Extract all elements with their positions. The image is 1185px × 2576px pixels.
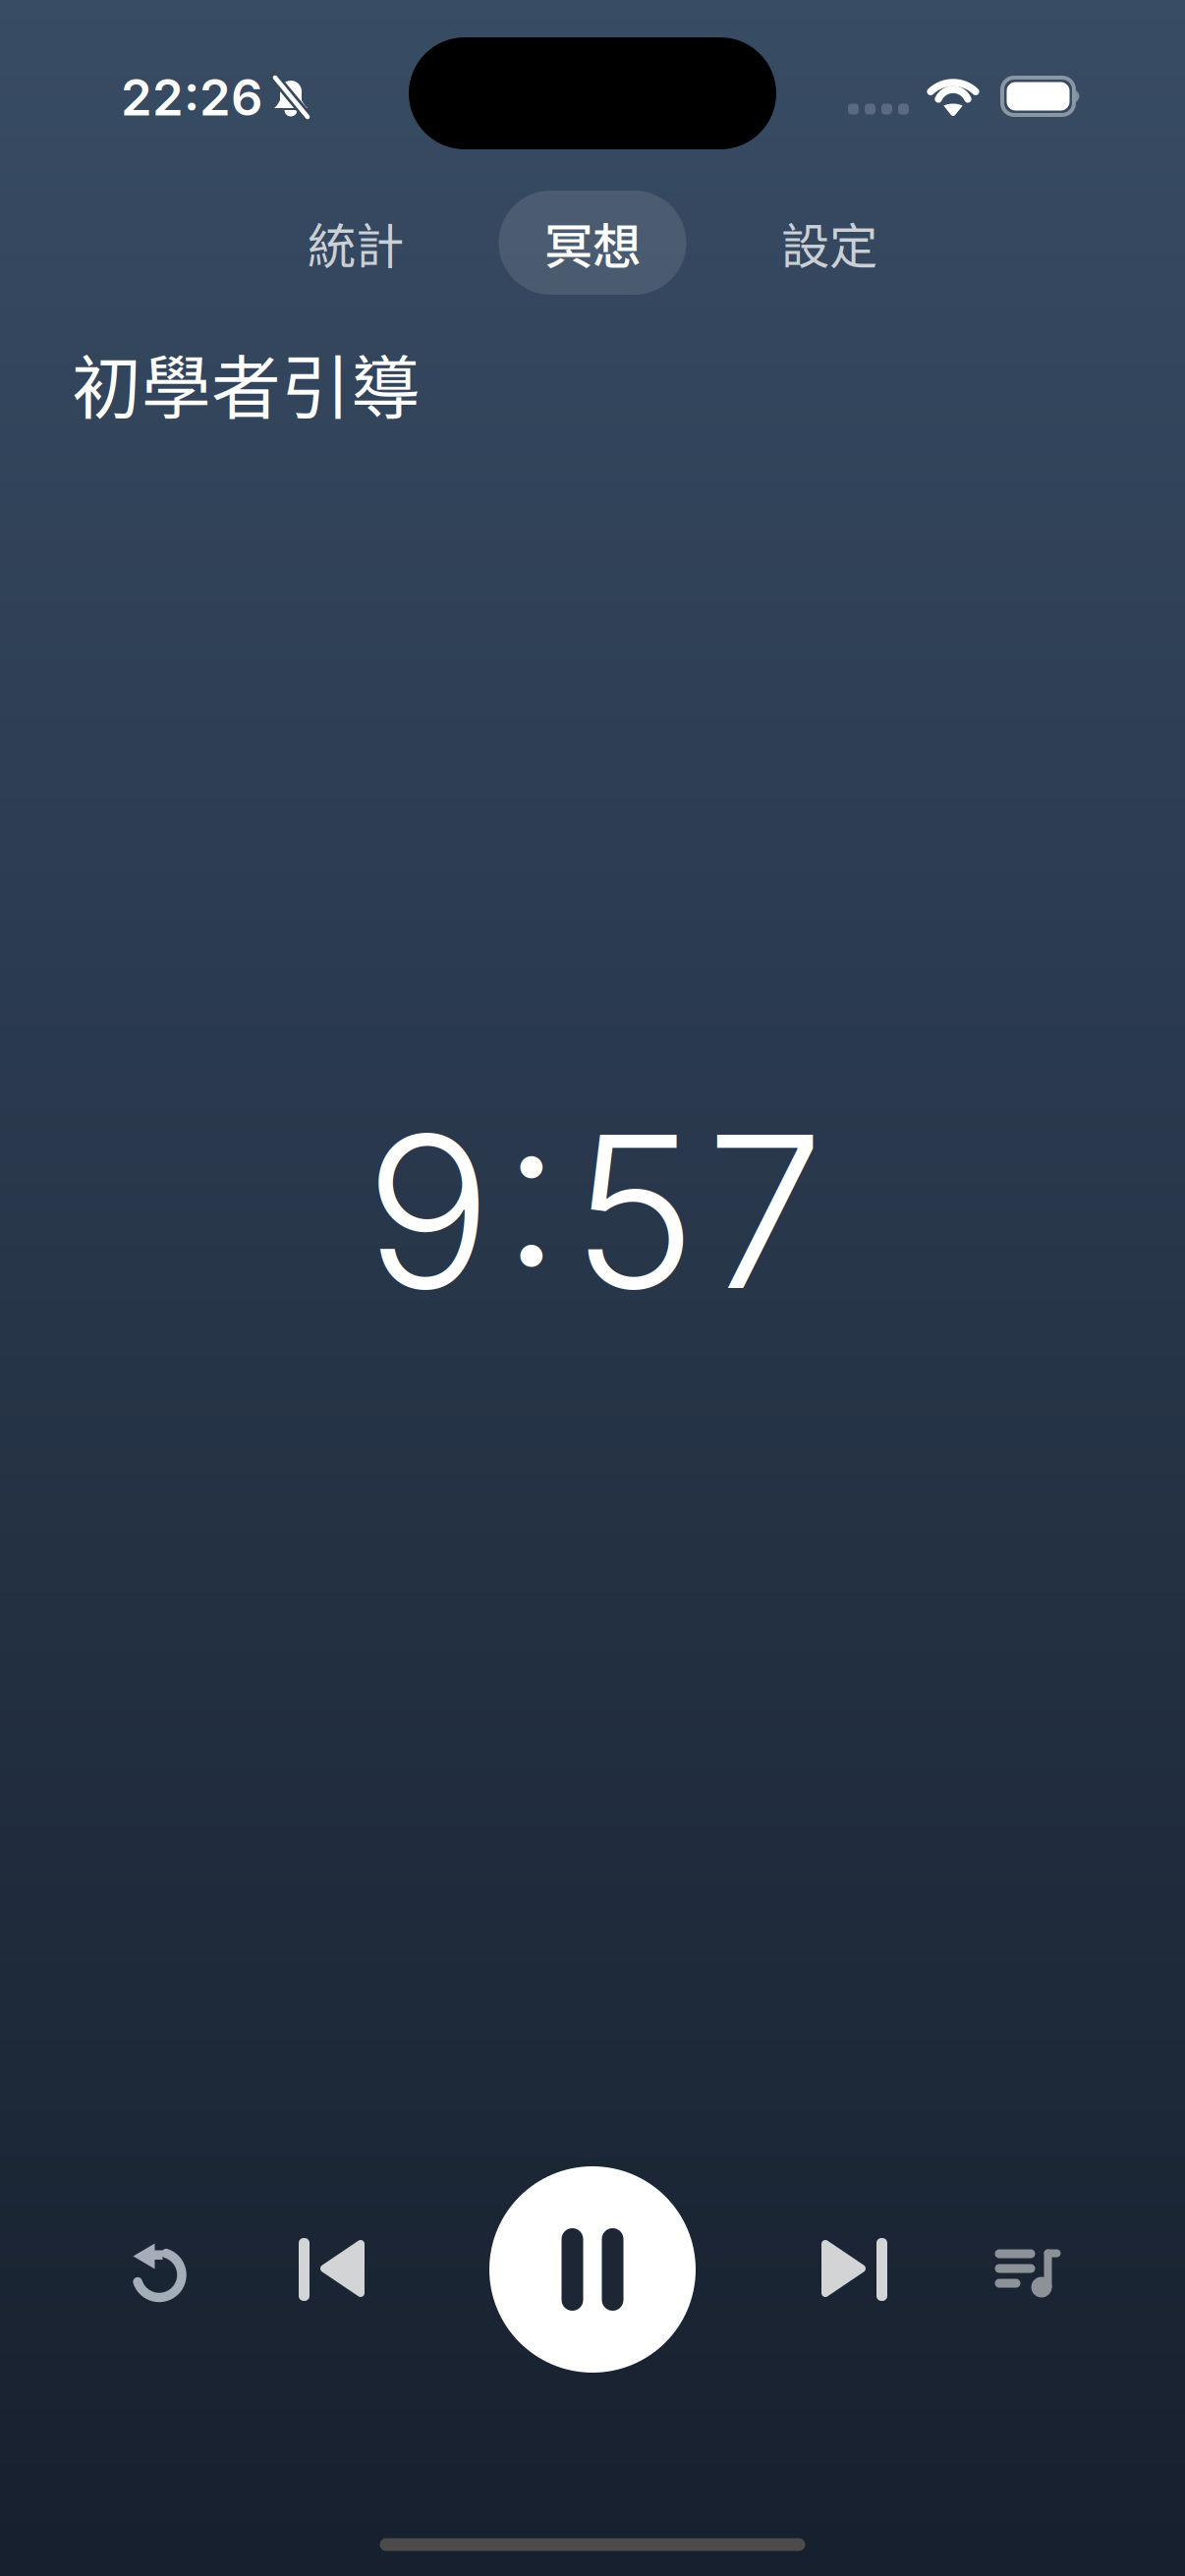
staticText: 統計 xyxy=(308,208,404,278)
staticText: 冥想 xyxy=(544,208,641,278)
button[interactable]: Next track xyxy=(796,2211,914,2328)
button[interactable]: Previous track xyxy=(272,2211,390,2328)
button[interactable]: 統計 xyxy=(262,191,450,295)
button[interactable]: Pause xyxy=(489,2166,696,2373)
staticText: 初學者引導 xyxy=(72,333,421,433)
button[interactable]: 設定 xyxy=(735,191,923,295)
staticText: 22:26 xyxy=(121,67,262,127)
button[interactable]: 冥想 xyxy=(499,191,686,295)
button[interactable]: Queue xyxy=(969,2214,1087,2332)
button[interactable]: Restart xyxy=(100,2214,218,2332)
staticText: 設定 xyxy=(781,208,877,278)
staticText: 9:57 xyxy=(365,1084,824,1339)
